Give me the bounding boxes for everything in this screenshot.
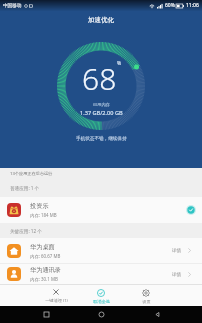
- staticText: 68: [82, 58, 117, 99]
- staticText: 60%: [165, 2, 175, 9]
- staticText: 普通应用: 1 个: [10, 185, 40, 191]
- staticText: 1.37 GB/2.00 GB: [80, 109, 123, 117]
- staticText: 11:06: [186, 2, 199, 9]
- staticText: 手机状态不错，继续保持: [76, 136, 127, 142]
- staticText: %: [117, 60, 122, 67]
- staticText: 一键清理 (1): [45, 298, 68, 304]
- button[interactable]: 华为通讯录: [0, 264, 202, 284]
- staticText: 取消全选: [93, 299, 110, 304]
- staticText: 中国移动: [3, 3, 22, 9]
- button[interactable]: Home: [91, 306, 111, 323]
- button[interactable]: 取消全选: [87, 289, 115, 304]
- staticText: 内存: 60.67 MB: [30, 253, 61, 259]
- staticText: 投资乐: [30, 202, 49, 210]
- button[interactable]: 华为桌面: [0, 238, 202, 263]
- staticText: 内存: 30.1 MB: [30, 276, 58, 282]
- staticText: 内存: 184 MB: [30, 212, 57, 218]
- staticText: 设置: [142, 299, 151, 304]
- staticText: 13个应用正在后台运行: [10, 171, 53, 177]
- staticText: 详情: [172, 248, 182, 254]
- button[interactable]: 一键清理 (1): [42, 288, 70, 304]
- button[interactable]: Back: [147, 306, 167, 323]
- staticText: 加速优化: [88, 16, 114, 24]
- staticText: 华为通讯录: [30, 266, 61, 274]
- staticText: 华为桌面: [30, 243, 55, 251]
- staticText: 详情: [172, 272, 182, 278]
- staticText: 已用内存: [93, 102, 110, 107]
- button[interactable]: 投资乐: [0, 197, 202, 223]
- button[interactable]: 设置: [132, 289, 160, 304]
- staticText: 关键应用: 12 个: [10, 228, 42, 234]
- button[interactable]: Recents: [36, 306, 56, 323]
